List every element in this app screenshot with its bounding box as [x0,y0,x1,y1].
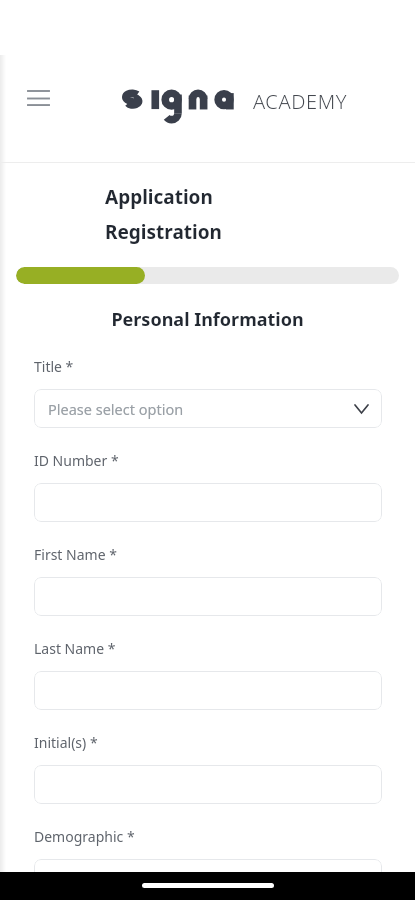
staticText: ACADEMY [253,88,347,115]
button[interactable]: Please select option [34,859,382,898]
button[interactable] [34,577,382,616]
staticText: Application [105,184,213,210]
staticText: ID Number * [34,451,119,470]
staticText: Initial(s) * [34,733,98,752]
staticText: Last Name * [34,639,116,658]
button[interactable]: Please select option [34,389,382,428]
staticText: First Name * [34,545,117,564]
button[interactable]: Signa Academy [122,84,347,118]
button[interactable] [34,671,382,710]
staticText: Registration [105,219,222,245]
button[interactable] [34,765,382,804]
staticText: Please select option [48,869,355,889]
button[interactable]: Open navigation menu [18,78,58,118]
staticText: Title * [34,357,74,376]
staticText: Personal Information [0,307,415,332]
button[interactable] [34,483,382,522]
staticText: Demographic * [34,827,135,846]
staticText: Please select option [48,399,355,419]
